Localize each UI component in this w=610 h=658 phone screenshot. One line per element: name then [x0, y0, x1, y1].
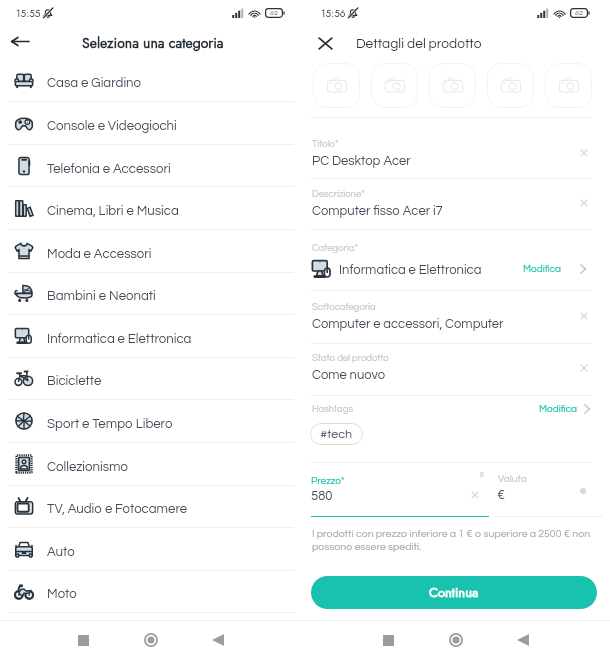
staticText: 15:55 [16, 6, 41, 20]
button[interactable]: Auto [0, 528, 305, 571]
button[interactable]: Clear [575, 359, 593, 377]
staticText: 6 [480, 471, 484, 478]
button[interactable]: Clear [575, 194, 593, 212]
staticText: Informatica e Elettronica [339, 263, 523, 276]
button[interactable]: Hashtags [305, 396, 610, 463]
button[interactable]: Clear [466, 486, 484, 504]
staticText: Informatica e Elettronica [47, 332, 192, 346]
staticText: Sport e Tempo Libero [47, 417, 173, 431]
staticText: Sottocategoria [312, 302, 376, 312]
staticText: Dettagli del prodotto [356, 37, 482, 51]
staticText: Bambini e Neonati [47, 289, 156, 303]
button[interactable]: Telefonia e Accessori [0, 145, 305, 188]
button[interactable]: Categoria* [305, 230, 610, 291]
staticText: Collezionismo [47, 460, 128, 474]
button[interactable]: Clear [575, 144, 593, 162]
button[interactable]: Titolo* [305, 118, 610, 179]
button[interactable]: Stato del prodotto [305, 344, 610, 396]
staticText: Modifica [539, 404, 578, 414]
button[interactable]: Back [7, 28, 33, 54]
button[interactable]: Informatica e Elettronica [0, 315, 305, 358]
staticText: Computer fisso Acer i7 [312, 204, 443, 217]
staticText: PC Desktop Acer [312, 154, 411, 167]
button[interactable]: Add photo [371, 63, 418, 108]
staticText: Cinema, Libri e Musica [47, 204, 179, 218]
button[interactable]: Sottocategoria [305, 291, 610, 344]
button[interactable]: Console e Videogiochi [0, 102, 305, 145]
button[interactable]: Sport e Tempo Libero [0, 400, 305, 443]
staticText: Descrizione* [312, 189, 365, 199]
button[interactable]: Recent apps [373, 625, 403, 655]
button[interactable]: Recent apps [68, 625, 98, 655]
staticText: Come nuovo [312, 368, 386, 381]
button[interactable]: Bambini e Neonati [0, 272, 305, 315]
staticText: Casa e Giardino [47, 76, 142, 90]
button[interactable]: Clear [575, 307, 593, 325]
staticText: Continua [429, 583, 479, 602]
button[interactable]: Collezionismo [0, 443, 305, 486]
staticText: 580 [311, 489, 333, 502]
button[interactable]: Add photo [313, 63, 360, 108]
staticText: Stato del prodotto [312, 353, 389, 363]
staticText: 15:56 [321, 6, 346, 20]
staticText: Valuta [498, 474, 527, 484]
staticText: Moto [47, 587, 77, 601]
button[interactable]: Valuta [495, 463, 610, 517]
button[interactable]: Home [441, 625, 471, 655]
staticText: TV, Audio e Fotocamere [47, 502, 188, 516]
button[interactable]: Descrizione* [305, 179, 610, 230]
staticText: I prodotti con prezzo inferiore a 1 € o … [312, 528, 593, 552]
staticText: Modifica [523, 264, 562, 274]
button[interactable]: Cinema, Libri e Musica [0, 187, 305, 230]
staticText: € [497, 488, 505, 501]
staticText: Telefonia e Accessori [47, 162, 171, 176]
staticText: Categoria* [312, 243, 358, 253]
staticText: Computer e accessori, Computer [312, 317, 504, 330]
staticText: Console e Videogiochi [47, 119, 177, 133]
staticText: 62 [270, 8, 279, 18]
staticText: Titolo* [312, 139, 339, 149]
button[interactable]: Prezzo* [305, 463, 489, 517]
button[interactable]: Moto [0, 570, 305, 613]
staticText: Moda e Accessori [47, 247, 152, 261]
staticText: Biciclette [47, 374, 102, 388]
button[interactable]: Casa e Giardino [0, 59, 305, 102]
button[interactable]: Back [508, 625, 538, 655]
staticText: 62 [575, 8, 584, 18]
button[interactable]: Add photo [545, 63, 592, 108]
staticText: #tech [320, 428, 353, 441]
button[interactable]: Home [136, 625, 166, 655]
staticText: Seleziona una categoria [82, 33, 224, 53]
staticText: Hashtags [312, 404, 539, 414]
button[interactable]: Close [313, 31, 337, 55]
button[interactable]: Back [203, 625, 233, 655]
button[interactable]: Biciclette [0, 357, 305, 400]
button[interactable]: Add photo [429, 63, 476, 108]
button[interactable]: Add photo [487, 63, 534, 108]
staticText: Prezzo* [311, 476, 345, 486]
button[interactable]: TV, Audio e Fotocamere [0, 485, 305, 528]
button[interactable]: Continua [311, 576, 597, 609]
button[interactable]: Moda e Accessori [0, 230, 305, 273]
staticText: Auto [47, 545, 75, 559]
